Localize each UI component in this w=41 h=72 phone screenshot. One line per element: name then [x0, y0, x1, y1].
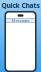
staticText: Quick Chats: [1, 1, 39, 10]
staticText: Messages: [11, 18, 29, 23]
